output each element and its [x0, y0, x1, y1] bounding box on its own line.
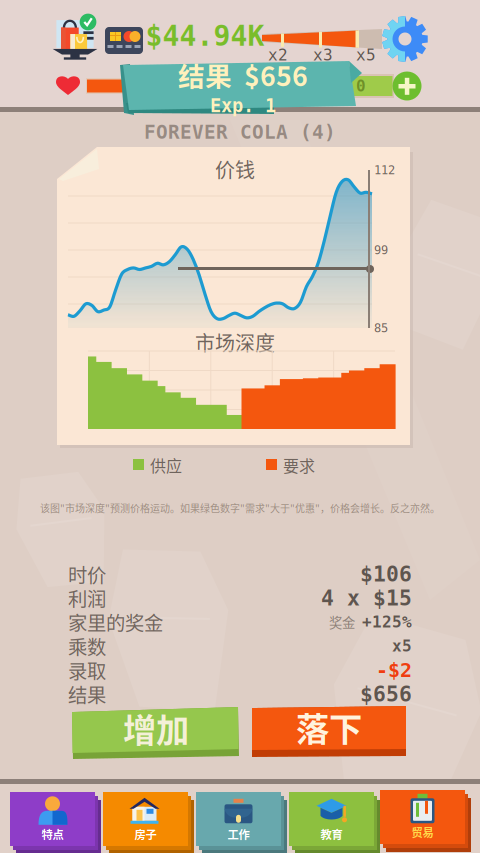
staticText: 录取: [68, 656, 106, 684]
staticText: 落下: [296, 703, 362, 751]
button[interactable]: 特点: [10, 792, 103, 853]
staticText: 结果: [68, 680, 106, 708]
staticText: x3: [313, 46, 333, 64]
staticText: Exp. 1: [210, 95, 276, 117]
staticText: 家里的奖金: [68, 608, 163, 636]
staticText: 时价: [68, 560, 106, 588]
button[interactable]: 教育: [289, 792, 382, 853]
staticText: x5: [356, 46, 376, 64]
staticText: 市场深度: [195, 327, 275, 356]
staticText: +125%: [362, 613, 412, 631]
staticText: 房子: [134, 826, 156, 842]
staticText: 特点: [41, 826, 63, 842]
staticText: 该图"市场深度"预测价格运动。如果绿色数字"需求"大于"优惠"，价格会增长。反之…: [40, 501, 440, 515]
staticText: 教育: [320, 826, 342, 842]
staticText: x5: [392, 637, 412, 655]
staticText: 贸易: [411, 824, 433, 840]
staticText: $656: [360, 682, 412, 706]
staticText: 要求: [283, 453, 315, 477]
staticText: 结果 $656: [178, 55, 308, 94]
staticText: FOREVER COLA (4): [144, 121, 336, 143]
button[interactable]: Add energy: [392, 71, 422, 101]
staticText: 0: [356, 77, 366, 95]
staticText: x2: [268, 46, 288, 64]
button[interactable]: 房子: [103, 792, 196, 853]
staticText: $44.94K: [145, 20, 264, 52]
staticText: 利润: [68, 584, 106, 612]
staticText: 供应: [150, 453, 182, 477]
staticText: 价钱: [215, 154, 255, 183]
button[interactable]: 工作: [196, 792, 289, 853]
staticText: 99: [374, 243, 388, 257]
staticText: 112: [374, 163, 395, 177]
button[interactable]: 增加: [71, 704, 241, 760]
staticText: $106: [360, 562, 412, 586]
button[interactable]: 贸易: [380, 790, 473, 853]
staticText: 增加: [123, 704, 189, 752]
staticText: 奖金: [329, 612, 355, 632]
button[interactable]: 落下: [250, 702, 408, 760]
staticText: 85: [374, 321, 388, 335]
staticText: 4 x $15: [321, 586, 412, 610]
staticText: 工作: [227, 826, 249, 842]
staticText: 乘数: [68, 632, 106, 660]
staticText: -$2: [376, 658, 412, 682]
